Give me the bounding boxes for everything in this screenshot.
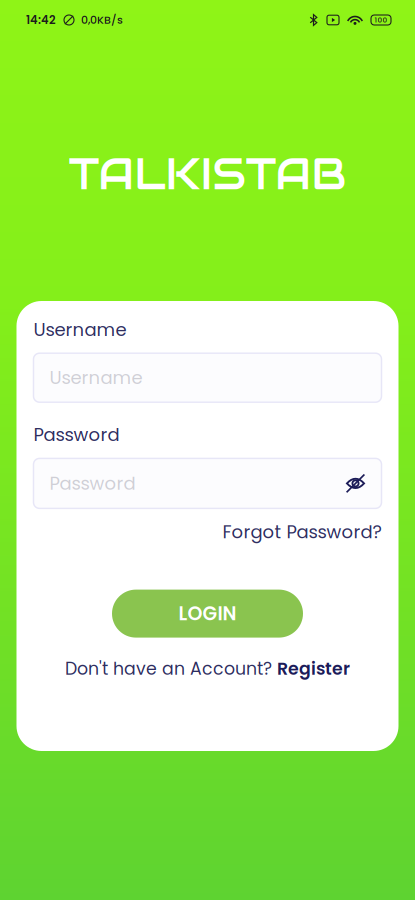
- staticText: TALKISTAB: [68, 147, 346, 201]
- staticText: Password: [49, 471, 135, 496]
- staticText: Password: [33, 422, 119, 447]
- staticText: 0,0KB/s: [81, 12, 123, 28]
- staticText: LOGIN: [178, 600, 236, 627]
- staticText: 14:42: [26, 12, 56, 28]
- staticText: Register: [277, 657, 350, 681]
- button[interactable]: Don't have an Account?: [33, 657, 381, 681]
- button[interactable]: Forgot Password?: [33, 519, 381, 545]
- staticText: 100: [374, 15, 387, 25]
- staticText: Don't have an Account?: [65, 657, 272, 681]
- staticText: Forgot Password?: [222, 519, 381, 545]
- staticText: Username: [49, 365, 142, 390]
- button[interactable]: Show password: [340, 458, 370, 508]
- staticText: Username: [33, 317, 126, 342]
- button[interactable]: LOGIN: [112, 590, 303, 638]
